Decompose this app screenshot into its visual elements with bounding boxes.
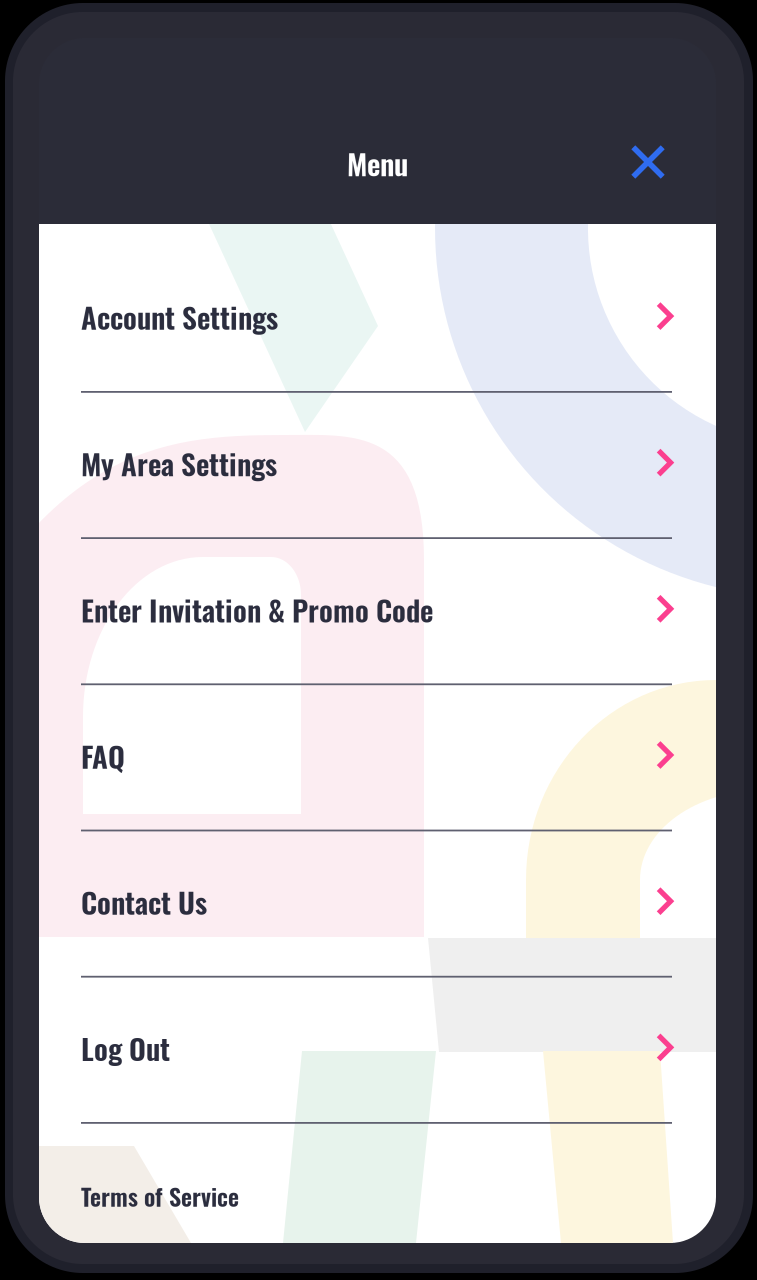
button[interactable]: Account Settings	[39, 224, 716, 391]
staticText: Terms of Service	[81, 1178, 239, 1214]
button[interactable]: My Area Settings	[39, 393, 716, 537]
staticText: Account Settings	[81, 295, 278, 338]
staticText: Menu	[347, 141, 408, 185]
button[interactable]: Contact Us	[39, 831, 716, 976]
button[interactable]: Enter Invitation & Promo Code	[39, 539, 716, 683]
button[interactable]: Terms of Service	[39, 1124, 716, 1256]
staticText: Log Out	[81, 1026, 170, 1070]
staticText: FAQ	[81, 734, 125, 777]
staticText: Enter Invitation & Promo Code	[81, 587, 433, 631]
staticText: Contact Us	[81, 880, 207, 923]
button[interactable]: Log Out	[39, 978, 716, 1122]
button[interactable]: FAQ	[39, 685, 716, 830]
button[interactable]: Close	[618, 132, 678, 192]
staticText: My Area Settings	[81, 441, 277, 485]
